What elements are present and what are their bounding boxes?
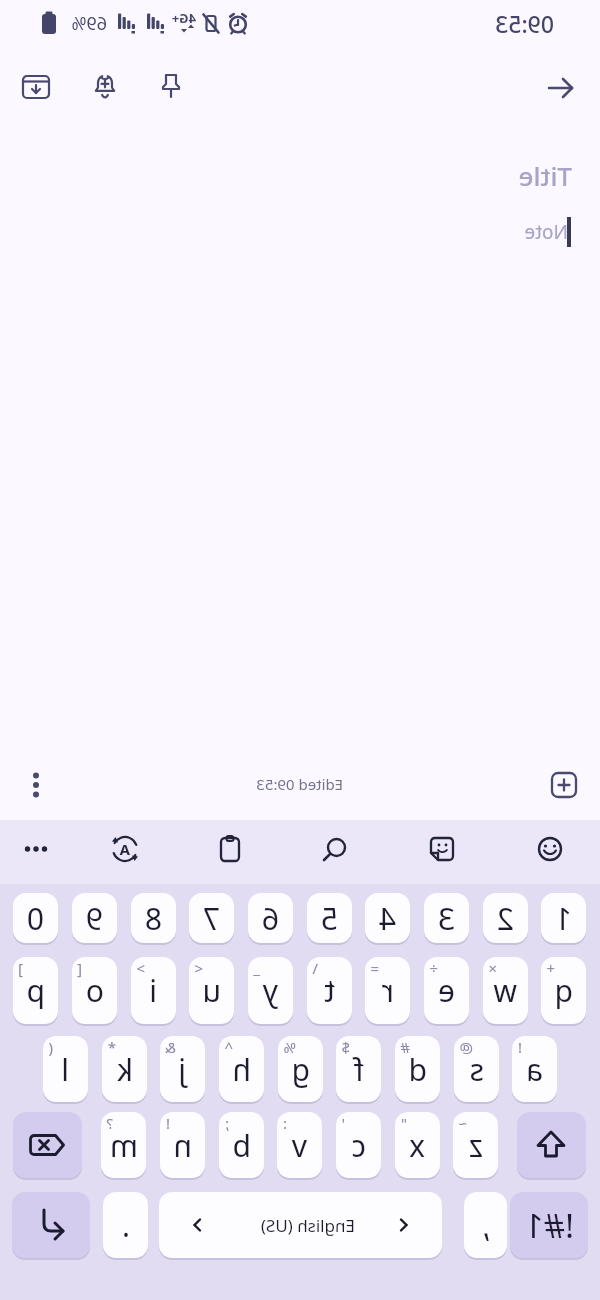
- staticText: ~: [458, 1113, 467, 1133]
- staticText: j: [178, 1049, 186, 1090]
- staticText: b: [232, 1125, 251, 1166]
- staticText: ×: [488, 958, 497, 978]
- staticText: 4G+: [171, 9, 196, 27]
- button[interactable]: [545, 73, 575, 103]
- button[interactable]: u: [189, 957, 234, 1024]
- button[interactable]: d: [395, 1036, 440, 1102]
- button[interactable]: [157, 71, 187, 101]
- staticText: A: [119, 839, 130, 859]
- button[interactable]: 8: [131, 893, 176, 943]
- staticText: e: [438, 970, 455, 1011]
- staticText: #: [400, 1037, 410, 1057]
- staticText: v: [291, 1125, 307, 1166]
- button[interactable]: 5: [307, 893, 352, 943]
- button[interactable]: b: [219, 1112, 264, 1178]
- staticText: 5: [320, 898, 338, 939]
- button[interactable]: 7: [189, 893, 234, 943]
- staticText: m: [109, 1125, 138, 1166]
- button[interactable]: [12, 1192, 90, 1258]
- button[interactable]: 0: [13, 893, 58, 943]
- staticText: z: [468, 1125, 483, 1166]
- staticText: !: [517, 1037, 522, 1057]
- staticText: (: [48, 1037, 53, 1057]
- button[interactable]: y: [248, 957, 293, 1024]
- button[interactable]: e: [424, 957, 469, 1024]
- button[interactable]: [13, 1112, 82, 1178]
- staticText: ': [341, 1113, 345, 1133]
- button[interactable]: [320, 834, 350, 864]
- staticText: f: [353, 1049, 364, 1090]
- staticText: u: [202, 970, 221, 1011]
- staticText: 0: [26, 898, 44, 939]
- button[interactable]: [550, 771, 578, 799]
- staticText: 09:53: [495, 8, 554, 39]
- button[interactable]: [535, 834, 565, 864]
- button[interactable]: 9: [72, 893, 117, 943]
- button[interactable]: .: [103, 1192, 148, 1258]
- button[interactable]: [21, 834, 51, 864]
- button[interactable]: ,: [464, 1192, 507, 1258]
- button[interactable]: [24, 770, 48, 800]
- button[interactable]: j: [160, 1036, 205, 1102]
- staticText: ^: [224, 1037, 233, 1057]
- button[interactable]: [20, 71, 52, 103]
- button[interactable]: n: [160, 1112, 205, 1178]
- button[interactable]: [427, 834, 457, 864]
- button[interactable]: h: [219, 1036, 264, 1102]
- button[interactable]: f: [336, 1036, 381, 1102]
- staticText: ]: [18, 958, 23, 978]
- button[interactable]: l: [43, 1036, 88, 1102]
- button[interactable]: A: [110, 834, 140, 864]
- button[interactable]: c: [336, 1112, 381, 1178]
- button[interactable]: 6: [248, 893, 293, 943]
- button[interactable]: o: [72, 957, 117, 1024]
- button[interactable]: English (US): [159, 1192, 442, 1258]
- button[interactable]: [89, 71, 121, 103]
- button[interactable]: a: [512, 1036, 557, 1102]
- staticText: ;: [224, 1113, 229, 1133]
- staticText: $: [341, 1037, 350, 1057]
- button[interactable]: 4: [365, 893, 410, 943]
- button[interactable]: !#1: [510, 1192, 588, 1258]
- button[interactable]: [517, 1112, 586, 1178]
- staticText: ÷: [429, 958, 438, 978]
- button[interactable]: s: [454, 1036, 499, 1102]
- staticText: Edited 09:53: [256, 774, 343, 794]
- button[interactable]: 3: [424, 893, 469, 943]
- button[interactable]: v: [277, 1112, 322, 1178]
- button[interactable]: [215, 834, 245, 864]
- button[interactable]: w: [483, 957, 528, 1024]
- button[interactable]: k: [102, 1036, 147, 1102]
- button[interactable]: m: [101, 1112, 146, 1178]
- button[interactable]: 2: [483, 893, 528, 943]
- staticText: \: [312, 958, 318, 978]
- button[interactable]: p: [13, 957, 58, 1024]
- button[interactable]: z: [453, 1112, 498, 1178]
- button[interactable]: t: [307, 957, 352, 1024]
- staticText: l: [61, 1049, 69, 1090]
- staticText: x: [409, 1125, 425, 1166]
- staticText: 69%: [71, 11, 107, 36]
- staticText: t: [324, 970, 335, 1011]
- staticText: !#1: [524, 1203, 574, 1248]
- staticText: <: [194, 958, 203, 978]
- button[interactable]: r: [365, 957, 410, 1024]
- staticText: @: [459, 1037, 473, 1057]
- staticText: =: [370, 958, 379, 978]
- staticText: English (US): [260, 1214, 355, 1237]
- button[interactable]: q: [541, 957, 586, 1024]
- staticText: &: [165, 1037, 176, 1057]
- staticText: Note: [524, 219, 568, 245]
- staticText: q: [554, 970, 573, 1011]
- staticText: 8: [144, 898, 162, 939]
- staticText: i: [149, 970, 157, 1011]
- button[interactable]: x: [395, 1112, 440, 1178]
- button[interactable]: 1: [541, 893, 586, 943]
- staticText: Title: [518, 158, 572, 193]
- button[interactable]: i: [131, 957, 176, 1024]
- button[interactable]: g: [278, 1036, 323, 1102]
- staticText: o: [85, 970, 104, 1011]
- staticText: :: [282, 1113, 287, 1133]
- staticText: ": [400, 1113, 407, 1133]
- staticText: n: [173, 1125, 192, 1166]
